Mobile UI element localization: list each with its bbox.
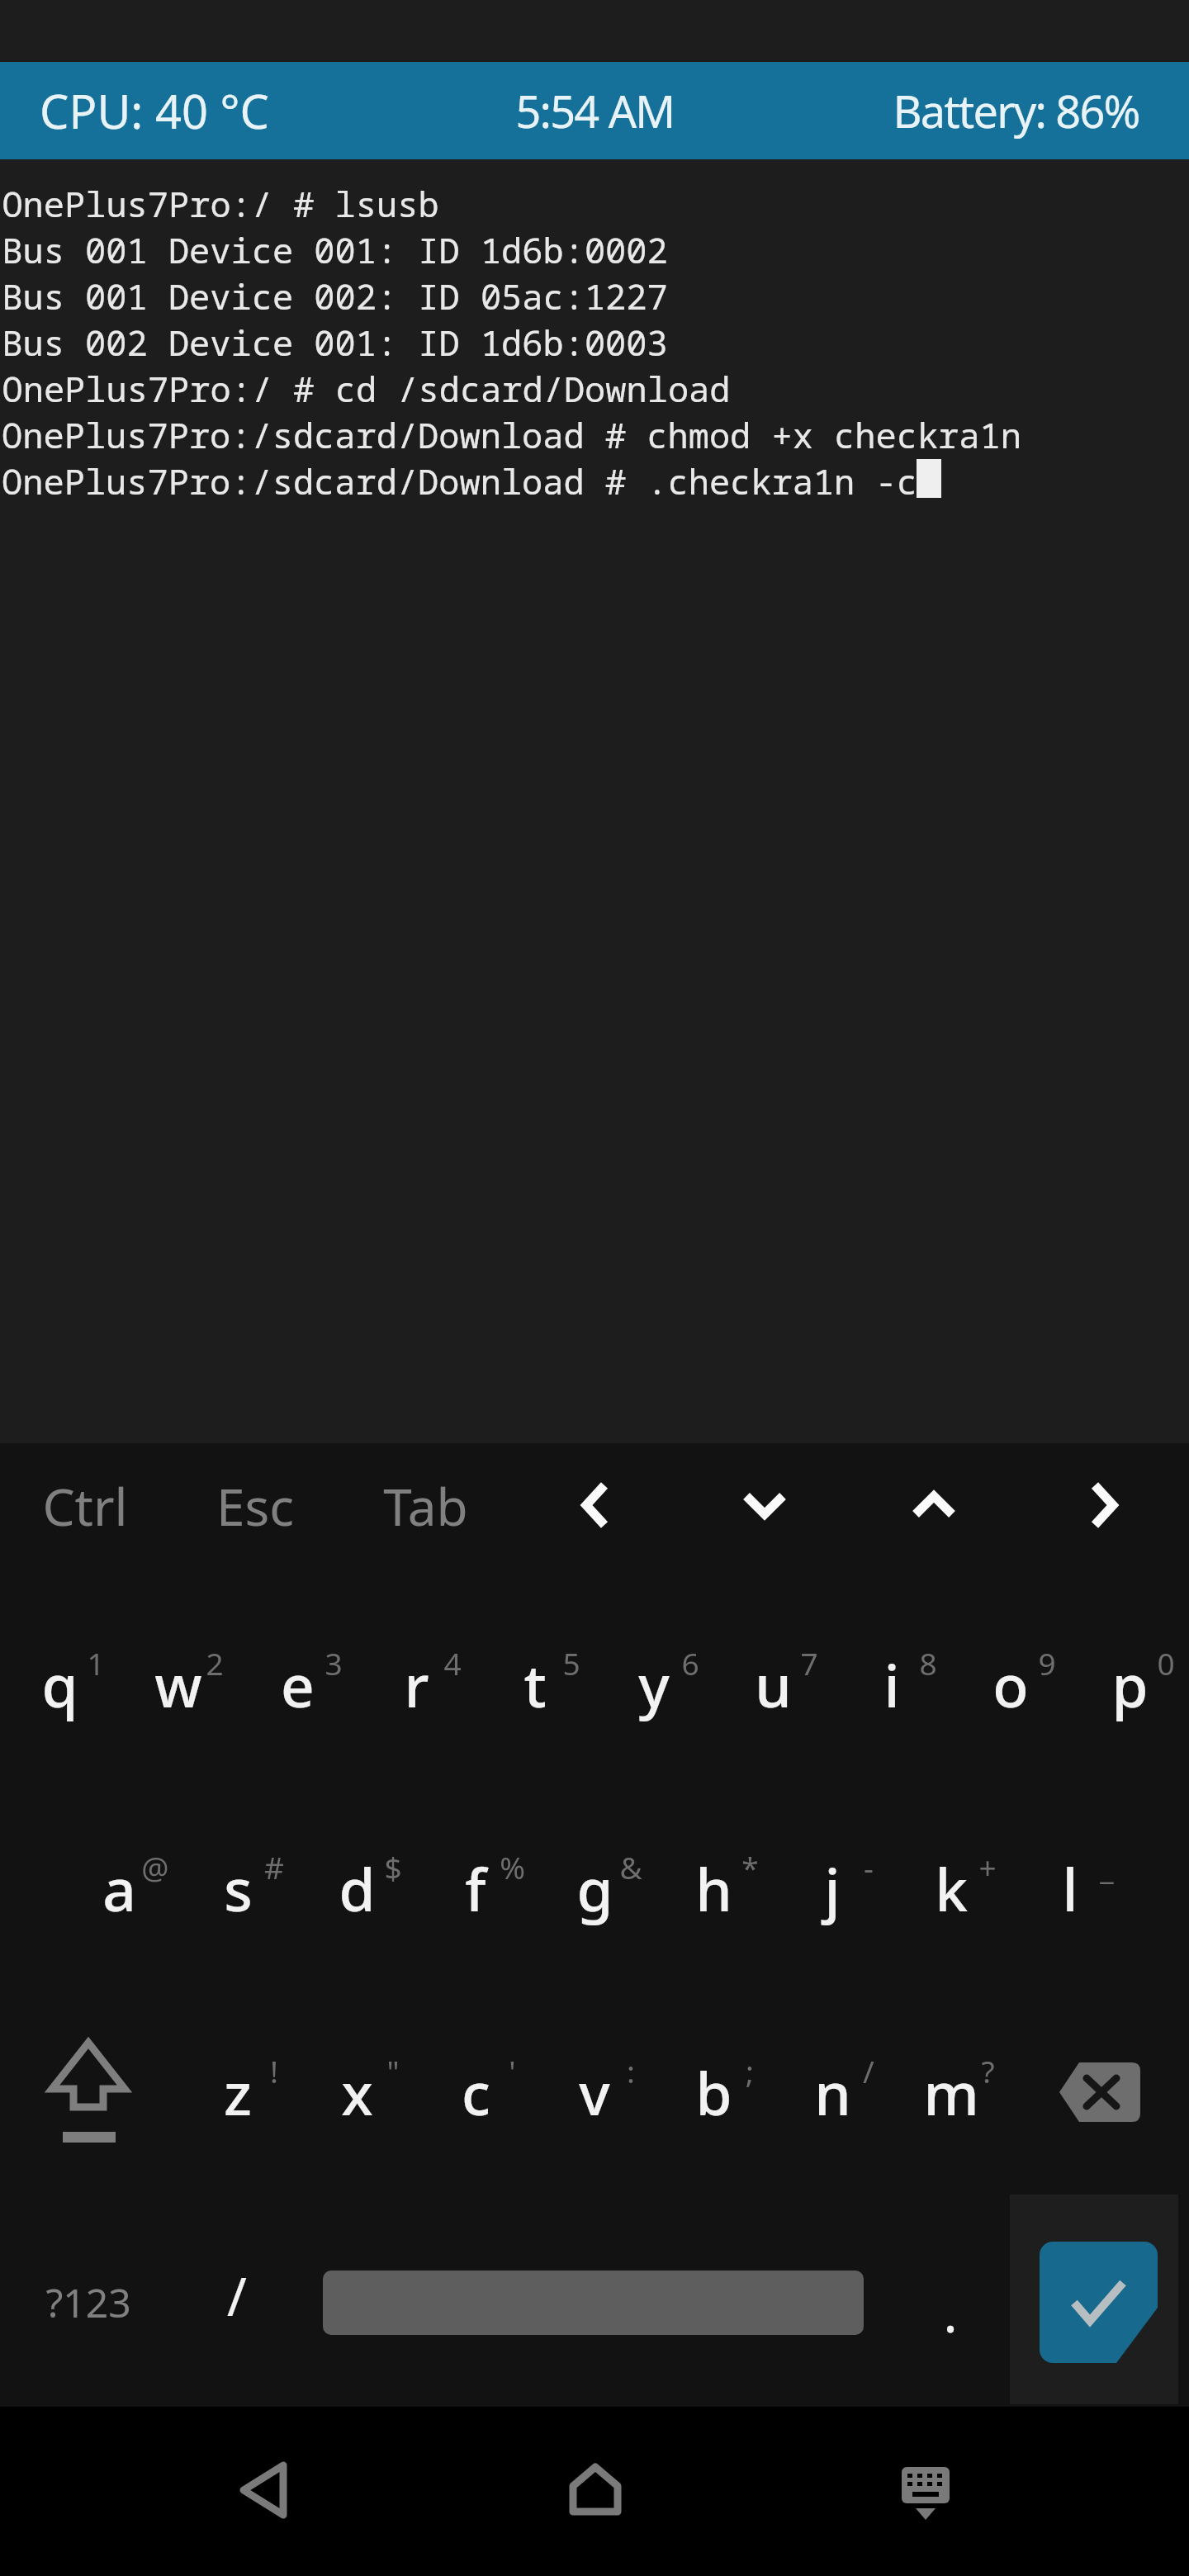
button[interactable] <box>713 1593 832 1775</box>
staticText: 7 <box>800 1642 818 1683</box>
button[interactable] <box>178 1797 297 1979</box>
staticText: t <box>523 1645 547 1725</box>
staticText: 6 <box>681 1642 699 1683</box>
staticText: @ <box>141 1846 169 1887</box>
button[interactable] <box>654 2001 773 2183</box>
staticText: z <box>224 2053 252 2133</box>
button[interactable] <box>1034 2026 1166 2158</box>
staticText: s <box>224 1849 253 1929</box>
button[interactable] <box>773 1797 892 1979</box>
button[interactable]: . <box>884 2237 1016 2386</box>
button[interactable] <box>832 1593 951 1775</box>
staticText: Bus 002 Device 001: ID 1d6b:0003 <box>2 319 668 366</box>
button[interactable] <box>178 2001 297 2183</box>
staticText: Tab <box>383 1471 468 1541</box>
button[interactable] <box>535 1797 654 1979</box>
staticText: - <box>864 1846 874 1887</box>
staticText: : <box>627 2050 635 2091</box>
button[interactable] <box>773 2001 892 2183</box>
button[interactable] <box>892 1797 1011 1979</box>
staticText: i <box>883 1645 900 1725</box>
staticText: $ <box>384 1846 402 1887</box>
button[interactable] <box>297 1797 416 1979</box>
button[interactable]: Esc <box>173 1444 338 1568</box>
staticText: a <box>102 1849 136 1929</box>
staticText: / <box>863 2050 874 2091</box>
button[interactable] <box>22 2026 154 2158</box>
staticText: w <box>154 1645 202 1725</box>
staticText: u <box>755 1645 792 1725</box>
staticText: 3 <box>324 1642 343 1683</box>
staticText: 0 <box>1157 1642 1175 1683</box>
button[interactable] <box>1038 1439 1170 1571</box>
button[interactable]: Ctrl <box>2 1444 168 1568</box>
button[interactable]: Tab <box>343 1444 508 1568</box>
staticText: d <box>339 1849 376 1929</box>
button[interactable] <box>59 1797 178 1979</box>
staticText: p <box>1111 1645 1149 1725</box>
staticText: 5:54 AM <box>515 80 675 141</box>
staticText: c <box>462 2053 490 2133</box>
button[interactable] <box>535 2001 654 2183</box>
staticText: OnePlus7Pro:/ # cd /sdcard/Download <box>2 365 731 412</box>
button[interactable] <box>297 2001 416 2183</box>
button[interactable] <box>323 2271 864 2335</box>
staticText: Ctrl <box>42 1471 128 1541</box>
staticText: j <box>824 1849 841 1929</box>
staticText: _ <box>1100 1846 1114 1887</box>
staticText: x <box>341 2053 373 2133</box>
button[interactable] <box>1011 1797 1130 1979</box>
button[interactable] <box>1040 2242 1158 2363</box>
staticText: CPU: 40 °C <box>40 79 269 142</box>
button[interactable] <box>860 2424 992 2556</box>
staticText: 4 <box>443 1642 462 1683</box>
button[interactable] <box>699 1439 831 1571</box>
staticText: OnePlus7Pro:/sdcard/Download # .checkra1… <box>2 457 917 504</box>
staticText: * <box>741 1846 759 1887</box>
button[interactable] <box>416 2001 535 2183</box>
staticText: l <box>1062 1849 1078 1929</box>
button[interactable] <box>529 1439 661 1571</box>
button[interactable] <box>594 1593 713 1775</box>
button[interactable]: ?123 <box>6 2228 171 2376</box>
staticText: ; <box>746 2050 754 2091</box>
staticText: OnePlus7Pro:/ # lsusb <box>2 180 439 227</box>
button[interactable] <box>654 1797 773 1979</box>
staticText: 9 <box>1038 1642 1056 1683</box>
staticText: " <box>386 2050 400 2091</box>
button[interactable] <box>529 2424 661 2556</box>
button[interactable] <box>199 2424 331 2556</box>
staticText: 5 <box>562 1642 580 1683</box>
staticText: m <box>923 2053 979 2133</box>
staticText: ! <box>270 2050 278 2091</box>
button[interactable] <box>0 1593 119 1775</box>
staticText: . <box>943 2276 958 2348</box>
button[interactable] <box>238 1593 357 1775</box>
staticText: ?123 <box>45 2275 131 2329</box>
staticText: e <box>281 1645 315 1725</box>
button[interactable] <box>357 1593 476 1775</box>
staticText: g <box>576 1849 613 1929</box>
staticText: Esc <box>216 1471 294 1541</box>
button[interactable] <box>476 1593 594 1775</box>
staticText: Bus 001 Device 002: ID 05ac:1227 <box>2 272 668 320</box>
staticText: OnePlus7Pro:/sdcard/Download # chmod +x … <box>2 411 1021 458</box>
button[interactable] <box>416 1797 535 1979</box>
button[interactable] <box>119 1593 238 1775</box>
staticText: + <box>978 1846 997 1887</box>
staticText: h <box>695 1849 732 1929</box>
staticText: ? <box>981 2050 995 2091</box>
button[interactable]: / <box>171 2221 303 2370</box>
staticText: o <box>992 1645 1029 1725</box>
staticText: ' <box>509 2050 516 2091</box>
staticText: v <box>579 2053 610 2133</box>
button[interactable] <box>1070 1593 1189 1775</box>
button[interactable] <box>892 2001 1011 2183</box>
staticText: k <box>935 1849 968 1929</box>
staticText: y <box>638 1645 670 1725</box>
button[interactable] <box>951 1593 1070 1775</box>
button[interactable] <box>868 1439 1000 1571</box>
staticText: # <box>264 1846 284 1887</box>
staticText: n <box>814 2053 851 2133</box>
staticText: q <box>41 1645 78 1725</box>
